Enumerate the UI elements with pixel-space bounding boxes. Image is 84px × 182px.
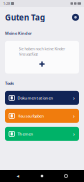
button[interactable]: Zurück [12, 170, 24, 182]
staticText: Guten Tag [5, 12, 45, 23]
staticText: Themen [17, 131, 33, 136]
staticText: › [73, 112, 75, 119]
staticText: ◂ [16, 173, 19, 179]
staticText: Dokumentationen [17, 95, 53, 100]
staticText: 1:28 [3, 1, 10, 6]
staticText: Meine Kinder [5, 31, 32, 36]
button[interactable]: Übersicht [60, 170, 72, 182]
button[interactable]: Hausaufgaben [5, 109, 79, 123]
button[interactable]: Profil [72, 14, 79, 21]
button[interactable]: Startbildschirm [36, 170, 48, 182]
button[interactable]: Themen [5, 127, 79, 141]
staticText: Hausaufgaben [17, 113, 44, 118]
staticText: › [73, 130, 75, 137]
staticText: Sie haben noch keine Kinder hinzugefügt [18, 46, 65, 56]
staticText: › [73, 94, 75, 101]
button[interactable]: Kind hinzufügen [37, 60, 46, 69]
button[interactable]: Dokumentationen [5, 91, 79, 105]
staticText: Tools [5, 81, 14, 86]
